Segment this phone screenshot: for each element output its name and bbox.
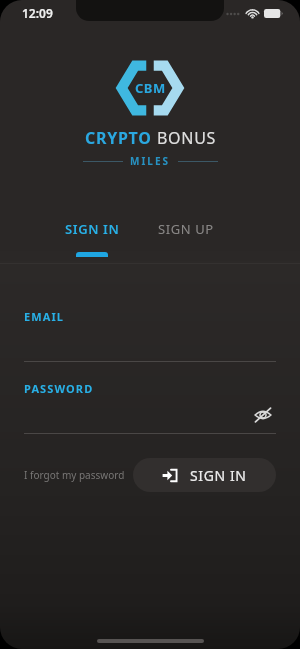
staticText: CBM xyxy=(135,79,166,97)
button[interactable]: SIGN IN xyxy=(58,220,126,257)
staticText: PASSWORD xyxy=(24,381,94,396)
staticText: I forgot my password xyxy=(24,468,125,482)
staticText: SIGN IN xyxy=(65,220,120,238)
staticText: SIGN IN xyxy=(190,466,247,485)
staticText: MILES xyxy=(130,154,171,168)
staticText: SIGN UP xyxy=(158,220,214,238)
button[interactable]: Show password xyxy=(250,402,276,428)
staticText: 12:09 xyxy=(22,5,53,21)
staticText: BONUS xyxy=(157,127,217,149)
button[interactable]: SIGN UP xyxy=(148,220,224,238)
button[interactable]: I forgot my password xyxy=(24,461,125,489)
button[interactable]: SIGN IN xyxy=(133,458,276,492)
staticText: CRYPTO xyxy=(85,127,152,149)
staticText: EMAIL xyxy=(24,309,65,324)
